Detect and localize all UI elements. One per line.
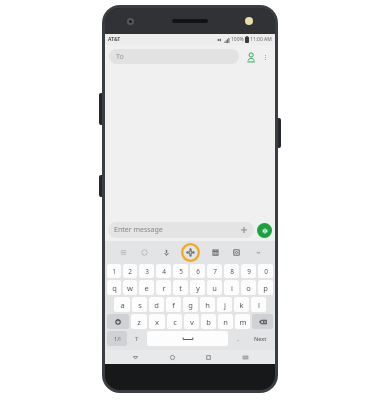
staticText: 3: [145, 267, 149, 276]
button[interactable]: 4: [156, 264, 171, 278]
button[interactable]: Shift: [107, 314, 129, 329]
button[interactable]: Hide keyboard: [238, 350, 252, 364]
staticText: n: [223, 317, 228, 327]
staticText: 4: [162, 267, 166, 276]
button[interactable]: Emoji: [137, 245, 151, 259]
staticText: i: [231, 283, 233, 293]
button[interactable]: Period: [230, 331, 246, 346]
button[interactable]: j: [217, 297, 232, 312]
button[interactable]: More options: [259, 51, 271, 63]
staticText: e: [144, 283, 149, 293]
staticText: 1: [112, 267, 116, 276]
staticText: AT&T: [108, 36, 121, 43]
button[interactable]: Backspace: [252, 314, 273, 329]
button[interactable]: m: [235, 314, 250, 329]
staticText: q: [112, 283, 117, 293]
staticText: 1/!: [114, 335, 121, 342]
staticText: Next: [254, 335, 267, 342]
staticText: g: [188, 300, 193, 310]
button[interactable]: Home: [165, 350, 179, 364]
staticText: s: [138, 300, 142, 310]
button[interactable]: t: [173, 280, 188, 295]
button[interactable]: u: [207, 280, 222, 295]
staticText: t: [179, 283, 182, 293]
button[interactable]: h: [200, 297, 215, 312]
staticText: p: [263, 283, 268, 293]
staticText: z: [137, 317, 141, 327]
staticText: j: [224, 300, 226, 310]
staticText: a: [120, 300, 125, 310]
staticText: c: [173, 317, 177, 327]
button[interactable]: 0: [258, 264, 273, 278]
staticText: k: [239, 300, 244, 310]
staticText: d: [154, 300, 159, 310]
staticText: m: [239, 317, 247, 327]
staticText: u: [212, 283, 217, 293]
staticText: .: [237, 334, 239, 344]
button[interactable]: n: [218, 314, 233, 329]
staticText: 5: [179, 267, 183, 276]
button[interactable]: v: [184, 314, 199, 329]
button[interactable]: y: [190, 280, 205, 295]
staticText: h: [205, 300, 210, 310]
button[interactable]: Screenshot: [229, 245, 243, 259]
button[interactable]: l: [251, 297, 266, 312]
button[interactable]: Expand: [251, 245, 265, 259]
button[interactable]: Calendar: [208, 245, 222, 259]
button[interactable]: Add contact: [243, 49, 259, 65]
staticText: T: [135, 335, 139, 343]
staticText: b: [206, 317, 211, 327]
button[interactable]: 9: [241, 264, 256, 278]
staticText: l: [258, 300, 260, 310]
button[interactable]: Send voice message: [257, 223, 272, 238]
button[interactable]: 2: [123, 264, 137, 278]
button[interactable]: Space: [147, 331, 228, 346]
button[interactable]: q: [107, 280, 121, 295]
button[interactable]: 5: [173, 264, 188, 278]
button[interactable]: f: [166, 297, 181, 312]
staticText: r: [162, 283, 166, 293]
button[interactable]: p: [258, 280, 273, 295]
button[interactable]: k: [234, 297, 249, 312]
button[interactable]: r: [156, 280, 171, 295]
button[interactable]: 8: [224, 264, 239, 278]
button[interactable]: x: [149, 314, 165, 329]
staticText: f: [172, 300, 175, 310]
button[interactable]: e: [139, 280, 154, 295]
button[interactable]: Recent apps: [201, 350, 215, 364]
button[interactable]: s: [132, 297, 147, 312]
staticText: 11:00 AM: [250, 36, 272, 43]
staticText: x: [155, 317, 159, 327]
button[interactable]: Stickers: [180, 242, 200, 262]
button[interactable]: 1: [107, 264, 121, 278]
button[interactable]: i: [224, 280, 239, 295]
button[interactable]: Enter message: [108, 222, 254, 238]
staticText: 8: [230, 267, 234, 276]
button[interactable]: a: [114, 297, 130, 312]
staticText: o: [246, 283, 251, 293]
button[interactable]: 1/!: [107, 331, 127, 346]
button[interactable]: w: [123, 280, 137, 295]
button[interactable]: Next: [248, 331, 273, 346]
staticText: 7: [213, 267, 217, 276]
button[interactable]: d: [149, 297, 164, 312]
staticText: 100%: [231, 36, 244, 43]
button[interactable]: Voice input: [159, 245, 173, 259]
staticText: 0: [264, 267, 268, 276]
button[interactable]: Back: [128, 350, 142, 364]
button[interactable]: To: [109, 49, 239, 64]
staticText: 2: [128, 267, 132, 276]
button[interactable]: g: [183, 297, 198, 312]
staticText: 6: [196, 267, 200, 276]
button[interactable]: o: [241, 280, 256, 295]
staticText: y: [196, 283, 200, 293]
button[interactable]: 3: [139, 264, 154, 278]
button[interactable]: 7: [207, 264, 222, 278]
button[interactable]: 6: [190, 264, 205, 278]
button[interactable]: b: [201, 314, 216, 329]
button[interactable]: Settings: [129, 331, 145, 346]
button[interactable]: Settings menu: [116, 245, 130, 259]
button[interactable]: c: [167, 314, 182, 329]
button[interactable]: z: [131, 314, 147, 329]
staticText: Enter message: [114, 225, 163, 235]
